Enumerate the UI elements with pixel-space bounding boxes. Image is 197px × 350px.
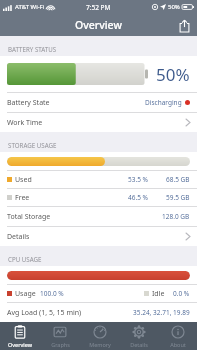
button[interactable]: About [158,322,197,350]
staticText: 53.5 % [128,175,148,184]
button[interactable]: Details [119,322,158,350]
button[interactable]: Usage [0,285,197,302]
button[interactable]: Details [0,227,197,246]
staticText: 100.0 % [40,289,64,298]
staticText: Battery State [7,98,50,108]
staticText: Discharging [145,98,182,107]
staticText: 0.0 % [173,289,190,298]
button[interactable]: Avg Load (1, 5, 15 min) [0,303,197,322]
staticText: About [170,341,186,348]
button[interactable]: Battery State [0,93,197,112]
button[interactable]: Free [0,189,197,206]
staticText: 50% [156,63,190,86]
staticText: Details [130,341,148,348]
staticText: Memory [89,341,111,348]
button[interactable]: Used [0,171,197,188]
staticText: 59.5 GB [166,193,190,202]
staticText: Overview [75,18,122,32]
staticText: Avg Load (1, 5, 15 min) [7,308,82,318]
button[interactable]: Overview [0,322,40,350]
staticText: Total Storage [7,212,51,222]
button[interactable]: Work Time [0,113,197,132]
staticText: Details [7,232,30,242]
staticText: 46.5 % [128,193,148,202]
staticText: 7:52 PM [86,3,111,12]
staticText: Free [15,193,30,203]
staticText: 35.24, 32.71, 19.89 [133,308,190,317]
button[interactable]: Total Storage [0,207,197,226]
staticText: Graphs [51,341,70,348]
staticText: 128.0 GB [162,212,190,221]
staticText: AT&T Wi-Fi [15,3,45,11]
button[interactable]: Share [171,14,197,36]
staticText: 50% [168,3,180,11]
staticText: Work Time [7,118,43,128]
staticText: Overview [8,341,32,348]
staticText: STORAGE USAGE [8,141,57,149]
staticText: Used [15,175,32,185]
staticText: BATTERY STATUS [8,45,57,53]
staticText: 68.5 GB [166,175,190,184]
button[interactable]: Memory [80,322,119,350]
button[interactable]: Graphs [40,322,80,350]
staticText: Usage [15,289,36,299]
staticText: CPU USAGE [8,255,42,263]
staticText: Idle [152,289,165,299]
